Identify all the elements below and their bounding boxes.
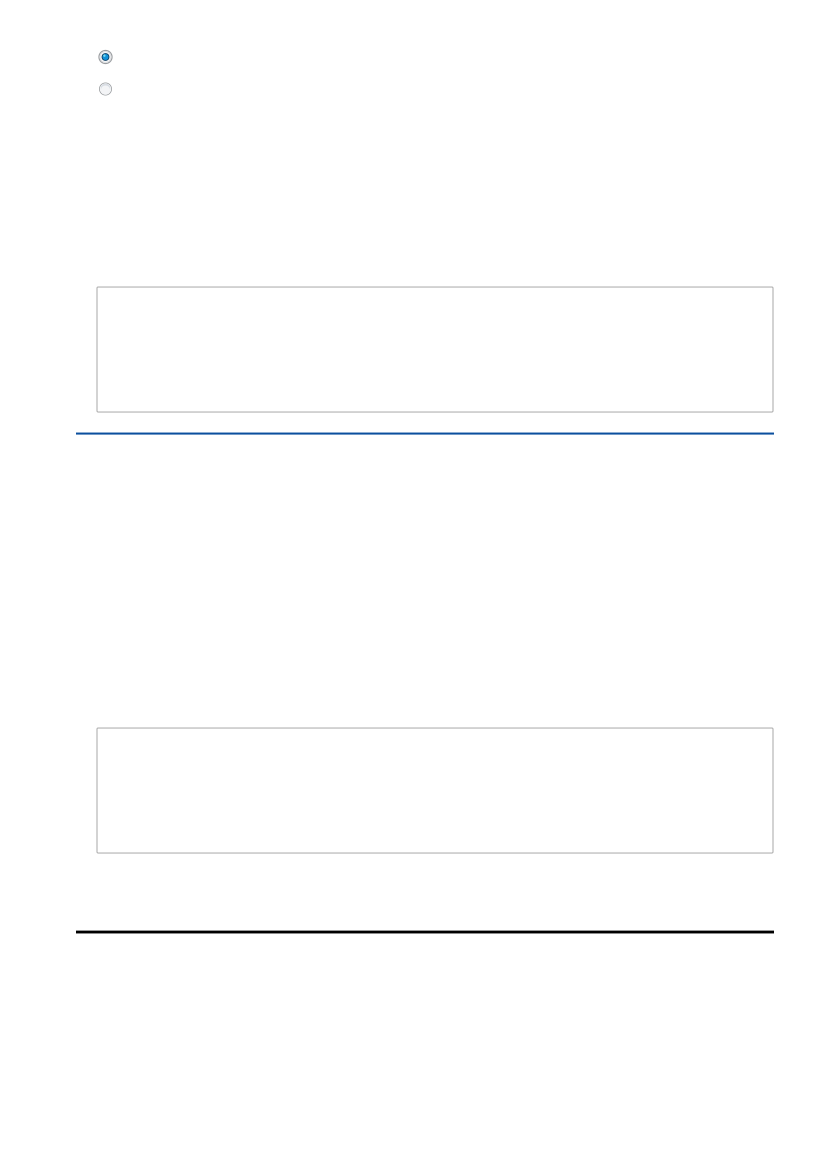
button[interactable]: Text field xyxy=(97,287,773,412)
button[interactable]: First option, selected xyxy=(97,49,113,65)
button[interactable]: Second option xyxy=(97,81,113,97)
button[interactable]: Text field xyxy=(97,728,773,853)
